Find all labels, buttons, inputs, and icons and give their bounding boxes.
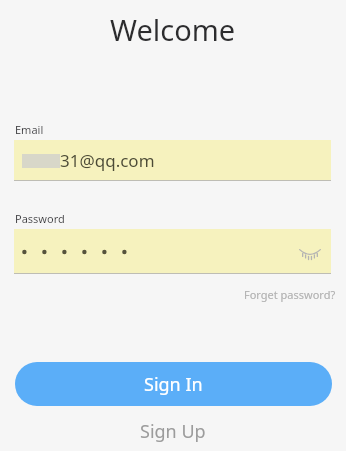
staticText: Sign In xyxy=(144,372,203,397)
button[interactable]: Forget password? xyxy=(242,285,338,304)
button[interactable]: Sign Up xyxy=(130,416,216,447)
button[interactable]: Show password xyxy=(296,238,324,266)
staticText: 31@qq.com xyxy=(60,149,155,172)
staticText: Password xyxy=(15,211,65,226)
button[interactable]: Show password xyxy=(14,229,331,274)
button[interactable]: Sign In xyxy=(15,362,332,406)
staticText: Welcome xyxy=(110,10,236,49)
staticText: Sign Up xyxy=(140,419,206,444)
staticText: Forget password? xyxy=(244,287,336,302)
staticText: Email xyxy=(15,122,44,137)
button[interactable]: 31@qq.com xyxy=(14,140,331,181)
